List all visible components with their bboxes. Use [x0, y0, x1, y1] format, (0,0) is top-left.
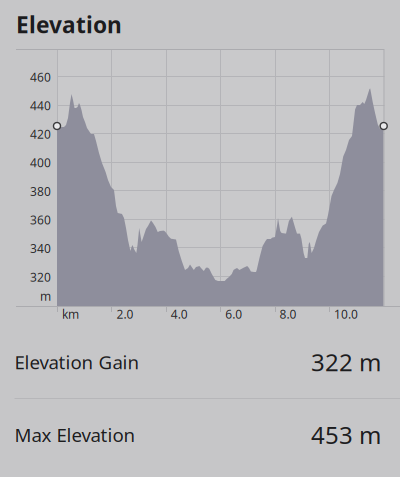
- staticText: 322 m: [311, 346, 381, 378]
- staticText: Elevation: [16, 9, 122, 39]
- staticText: 400: [30, 155, 51, 171]
- staticText: 2.0: [116, 306, 133, 322]
- staticText: 4.0: [171, 306, 188, 322]
- button[interactable]: Max Elevation: [0, 399, 400, 471]
- staticText: km: [62, 306, 79, 322]
- staticText: 360: [30, 212, 51, 228]
- staticText: 380: [30, 183, 51, 199]
- staticText: 453 m: [311, 419, 381, 451]
- staticText: m: [40, 288, 51, 304]
- staticText: 320: [30, 269, 51, 285]
- staticText: 420: [30, 126, 51, 142]
- staticText: Max Elevation: [14, 422, 135, 447]
- staticText: 8.0: [280, 306, 297, 322]
- button[interactable]: Elevation Gain: [0, 326, 400, 398]
- staticText: 340: [30, 240, 51, 256]
- staticText: 10.0: [334, 306, 358, 322]
- staticText: 6.0: [225, 306, 242, 322]
- staticText: Elevation Gain: [14, 350, 139, 374]
- staticText: 440: [30, 98, 51, 113]
- staticText: 460: [30, 69, 51, 85]
